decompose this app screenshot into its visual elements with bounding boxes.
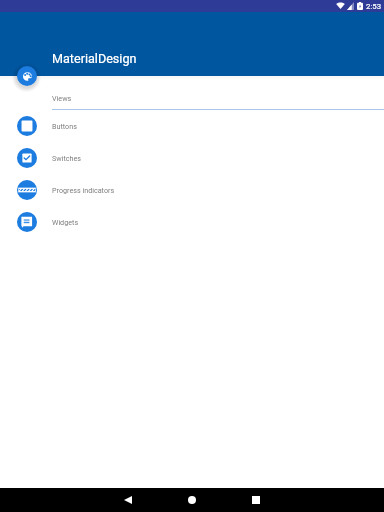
staticText: Progress indicators [52, 186, 115, 194]
button[interactable]: Views [0, 87, 384, 107]
staticText: Buttons [52, 122, 77, 130]
staticText: Views [52, 94, 72, 102]
button[interactable]: Buttons [0, 116, 384, 136]
staticText: MaterialDesign [52, 51, 137, 66]
button[interactable]: Recents [242, 490, 270, 510]
button[interactable]: Progress indicators [0, 180, 384, 200]
staticText: Widgets [52, 218, 79, 226]
button[interactable]: Back [114, 490, 142, 510]
staticText: 2:53 [366, 2, 382, 11]
staticText: Switches [52, 154, 82, 162]
button[interactable]: Widgets [0, 212, 384, 232]
button[interactable]: Theme palette [17, 66, 37, 86]
button[interactable]: Switches [0, 148, 384, 168]
button[interactable]: Home [178, 490, 206, 510]
